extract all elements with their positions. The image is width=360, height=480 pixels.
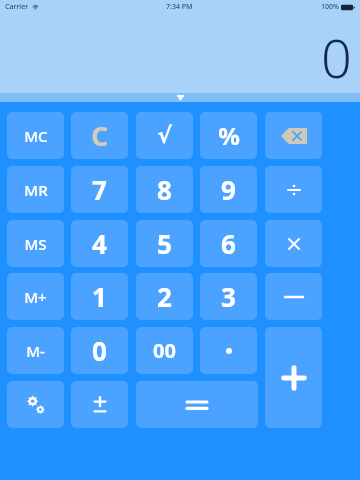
button[interactable]: 4 [71, 220, 128, 267]
button[interactable]: 0 [71, 327, 128, 374]
button[interactable]: % [200, 112, 257, 159]
button[interactable]: C [71, 112, 128, 159]
staticText: M+ [24, 287, 47, 307]
button[interactable]: 00 [136, 327, 193, 374]
staticText: 0 [92, 333, 107, 368]
staticText: 6 [221, 226, 236, 261]
staticText: 7:34 PM [166, 2, 193, 12]
staticText: 0 [321, 20, 352, 94]
button[interactable]: M- [7, 327, 64, 374]
button[interactable]: Plus [265, 327, 322, 428]
staticText: % [218, 119, 240, 152]
staticText: 3 [221, 279, 236, 314]
button[interactable]: Divide [265, 166, 322, 213]
staticText: 2 [157, 279, 172, 314]
staticText: 100% [321, 2, 339, 12]
button[interactable]: 8 [136, 166, 193, 213]
button[interactable]: Settings [7, 381, 64, 428]
button[interactable]: 9 [200, 166, 257, 213]
button[interactable]: MC [7, 112, 64, 159]
staticText: 00 [153, 337, 176, 364]
button[interactable]: 5 [136, 220, 193, 267]
button[interactable]: Minus [265, 273, 322, 320]
button[interactable]: Decimal point [200, 327, 257, 374]
button[interactable]: 3 [200, 273, 257, 320]
button[interactable]: M+ [7, 273, 64, 320]
staticText: 4 [92, 226, 107, 261]
staticText: MS [24, 234, 47, 254]
staticText: MR [24, 180, 48, 200]
staticText: 8 [157, 172, 172, 207]
staticText: C [91, 118, 108, 153]
button[interactable]: 2 [136, 273, 193, 320]
staticText: 1 [92, 279, 107, 314]
button[interactable]: 6 [200, 220, 257, 267]
staticText: 7 [92, 172, 107, 207]
button[interactable]: MR [7, 166, 64, 213]
button[interactable]: MS [7, 220, 64, 267]
staticText: Carrier [5, 2, 29, 12]
staticText: 5 [157, 226, 172, 261]
staticText: MC [24, 126, 48, 146]
button[interactable]: 7 [71, 166, 128, 213]
button[interactable]: Expand [176, 95, 185, 101]
staticText: M- [26, 341, 45, 361]
button[interactable]: Equals [136, 381, 258, 428]
button[interactable]: √ [136, 112, 193, 159]
staticText: √ [157, 123, 172, 149]
button[interactable]: 1 [71, 273, 128, 320]
button[interactable]: Plus minus [71, 381, 128, 428]
staticText: 9 [221, 172, 236, 207]
button[interactable]: Backspace [265, 112, 322, 159]
button[interactable]: Multiply [265, 220, 322, 267]
